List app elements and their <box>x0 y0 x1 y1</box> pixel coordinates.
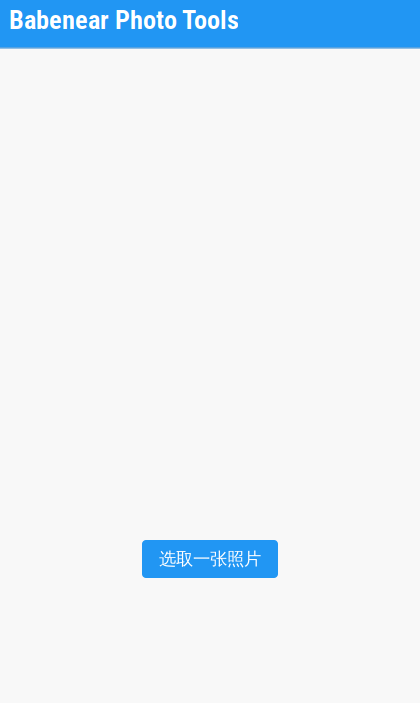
staticText: Babenear Photo Tools <box>9 5 239 35</box>
button[interactable]: 选取一张照片 <box>142 540 278 578</box>
staticText: 选取一张照片 <box>159 548 261 570</box>
